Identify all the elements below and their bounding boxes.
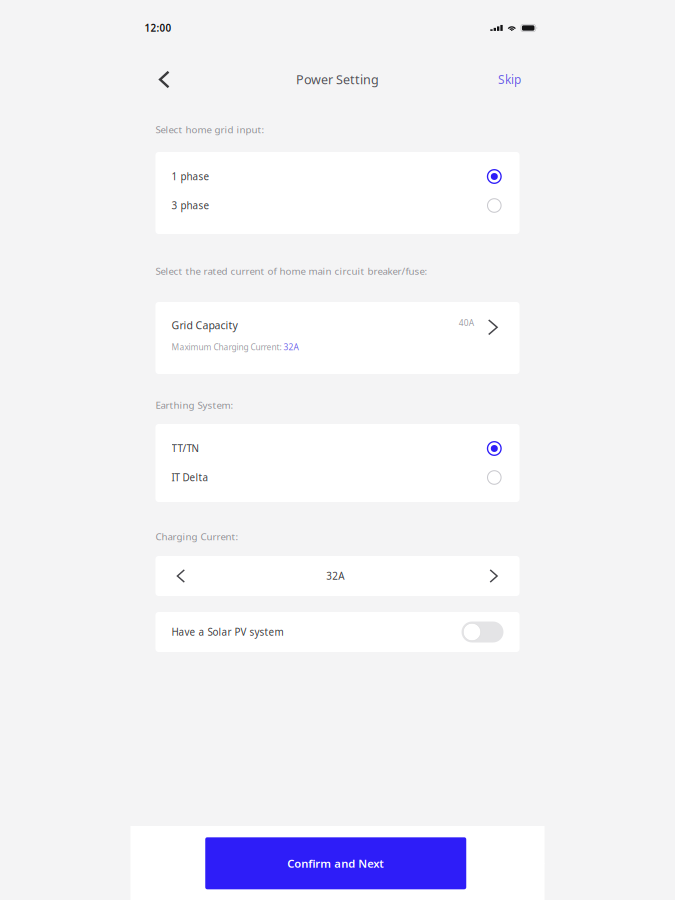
- staticText: 1 phase: [171, 170, 209, 183]
- staticText: TT/TN: [171, 442, 198, 455]
- staticText: Select home grid input:: [155, 123, 264, 136]
- staticText: 12:00: [144, 21, 171, 35]
- staticText: 32A: [326, 569, 344, 583]
- button[interactable]: 3 phase: [155, 191, 519, 220]
- staticText: Earthing System:: [155, 398, 233, 412]
- staticText: Skip: [498, 71, 521, 88]
- staticText: 40A: [459, 317, 474, 328]
- button[interactable]: 1 phase: [155, 162, 519, 191]
- staticText: Power Setting: [296, 71, 379, 88]
- staticText: IT Delta: [171, 471, 208, 484]
- button[interactable]: TT/TN: [155, 434, 519, 463]
- button[interactable]: Decrease: [155, 556, 200, 596]
- button[interactable]: Have a Solar PV system: [155, 612, 519, 652]
- button[interactable]: Confirm and Next: [205, 837, 466, 889]
- button[interactable]: Grid Capacity: [155, 302, 519, 374]
- button[interactable]: Increase: [474, 556, 519, 596]
- staticText: Have a Solar PV system: [171, 625, 283, 639]
- staticText: 3 phase: [171, 199, 209, 212]
- staticText: Confirm and Next: [287, 856, 384, 871]
- staticText: Maximum Charging Current:: [171, 341, 283, 353]
- staticText: Select the rated current of home main ci…: [155, 264, 427, 278]
- staticText: Charging Current:: [155, 530, 238, 543]
- button[interactable]: IT Delta: [155, 463, 519, 492]
- staticText: 32A: [283, 341, 298, 353]
- button[interactable]: Skip: [482, 56, 544, 103]
- staticText: Grid Capacity: [171, 318, 237, 332]
- button[interactable]: Back: [130, 56, 184, 103]
